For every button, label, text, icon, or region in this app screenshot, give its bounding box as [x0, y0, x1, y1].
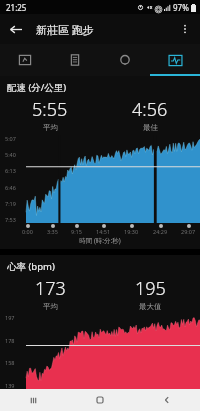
- button[interactable]: Recent apps: [0, 389, 66, 411]
- staticText: 29:07: [181, 228, 196, 235]
- staticText: 5:40: [5, 151, 16, 158]
- button[interactable]: Home: [66, 389, 133, 411]
- staticText: 最佳: [143, 123, 158, 132]
- staticText: 5:55: [32, 97, 68, 122]
- staticText: 平均: [43, 123, 58, 132]
- staticText: 0:00: [22, 228, 33, 235]
- staticText: 6:46: [5, 184, 16, 191]
- button[interactable]: More options: [170, 14, 200, 44]
- staticText: 平均: [43, 302, 58, 311]
- staticText: 97%: [173, 2, 189, 13]
- staticText: 3:35: [47, 228, 58, 235]
- staticText: 時間 (時:分:秒): [0, 236, 200, 245]
- staticText: 173: [35, 276, 66, 301]
- staticText: 195: [135, 276, 166, 301]
- staticText: 19:30: [124, 228, 139, 235]
- staticText: 14:51: [96, 228, 111, 235]
- button[interactable]: Details: [50, 44, 100, 76]
- staticText: 178: [5, 337, 15, 344]
- staticText: 配速 (分/公里): [7, 81, 67, 94]
- staticText: 4:56: [132, 97, 168, 122]
- staticText: 9:15: [71, 228, 82, 235]
- staticText: 新莊區 跑步: [36, 22, 94, 37]
- staticText: 24:29: [153, 228, 168, 235]
- button[interactable]: Map: [0, 44, 50, 76]
- staticText: 心率 (bpm): [7, 260, 55, 273]
- staticText: 6:13: [5, 167, 16, 174]
- staticText: 21:25: [6, 2, 27, 13]
- staticText: 197: [5, 314, 15, 321]
- staticText: 5:07: [5, 135, 16, 142]
- button[interactable]: Back: [133, 389, 200, 411]
- staticText: 最大值: [139, 302, 162, 311]
- staticText: 158: [5, 359, 15, 366]
- staticText: 139: [5, 382, 15, 389]
- button[interactable]: Charts: [150, 44, 200, 76]
- staticText: 7:53: [5, 216, 16, 223]
- staticText: 7:19: [5, 200, 16, 207]
- button[interactable]: Back: [0, 14, 30, 44]
- button[interactable]: Laps: [100, 44, 150, 76]
